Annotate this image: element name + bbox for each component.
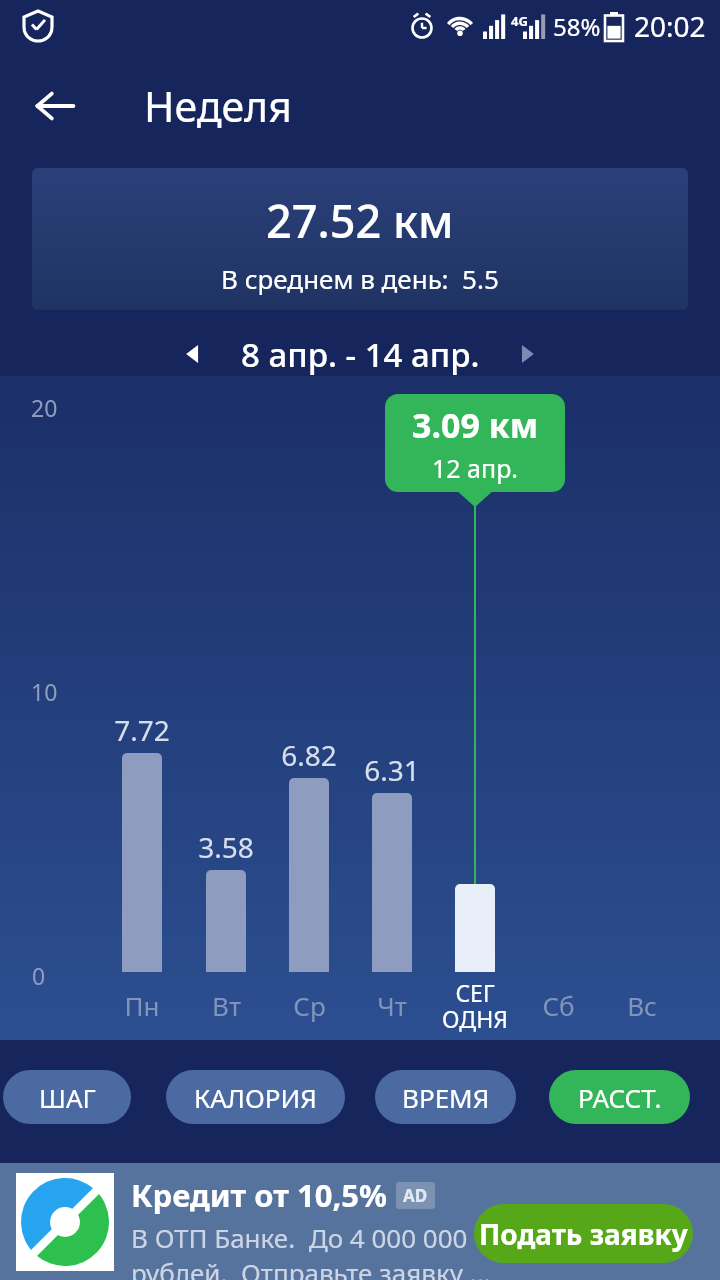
button[interactable]: 27.52 км (32, 168, 688, 310)
button[interactable]: Next week (504, 331, 550, 377)
button[interactable] (372, 793, 412, 972)
staticText: Чт (377, 988, 407, 1023)
staticText: Вт (212, 988, 241, 1023)
staticText: 58% (553, 10, 601, 43)
staticText: AD (403, 1184, 428, 1207)
staticText: 12 апр. (432, 451, 519, 485)
staticText: 7.72 (114, 711, 170, 749)
staticText: 3.09 км (412, 402, 539, 448)
button[interactable]: Previous week (170, 331, 216, 377)
button[interactable] (206, 870, 246, 972)
staticText: ВРЕМЯ (402, 1080, 490, 1115)
staticText: 20:02 (634, 7, 706, 45)
staticText: 20 (31, 392, 58, 423)
staticText: Ср (293, 988, 326, 1023)
button[interactable]: ВРЕМЯ (375, 1070, 516, 1124)
button[interactable]: Кредит от 10,5% (0, 1163, 720, 1280)
button[interactable]: КАЛОРИЯ (166, 1070, 345, 1124)
staticText: 27.52 км (266, 190, 454, 251)
staticText: В ОТП Банке. До 4 000 000 (131, 1220, 468, 1255)
button[interactable]: Back (22, 73, 88, 139)
staticText: В среднем в день: 5.5 (221, 261, 499, 296)
staticText: Сб (542, 988, 575, 1023)
staticText: Подать заявку (479, 1215, 688, 1253)
staticText: 3.58 (198, 828, 254, 866)
button[interactable]: ШАГ (3, 1070, 131, 1124)
staticText: рублей. Отправьте заявку ... (131, 1255, 491, 1280)
staticText: РАССТ. (578, 1080, 662, 1115)
button[interactable]: 3.09 км (385, 394, 565, 492)
staticText: 6.31 (364, 751, 420, 789)
button[interactable] (289, 778, 329, 972)
button[interactable] (122, 753, 162, 972)
staticText: Кредит от 10,5% (131, 1174, 387, 1216)
staticText: 8 апр. - 14 апр. (241, 332, 480, 377)
staticText: Вс (627, 988, 657, 1023)
staticText: 10 (31, 676, 58, 707)
staticText: КАЛОРИЯ (194, 1080, 317, 1115)
staticText: Пн (124, 988, 160, 1023)
button[interactable]: Подать заявку (474, 1204, 693, 1263)
staticText: ШАГ (39, 1080, 96, 1115)
staticText: 0 (32, 960, 46, 991)
button[interactable] (455, 884, 495, 972)
staticText: Неделя (144, 78, 292, 134)
staticText: 6.82 (281, 736, 337, 774)
staticText: СЕГ ОДНЯ (442, 977, 508, 1035)
staticText: 4G (511, 12, 528, 30)
button[interactable]: РАССТ. (549, 1070, 690, 1124)
